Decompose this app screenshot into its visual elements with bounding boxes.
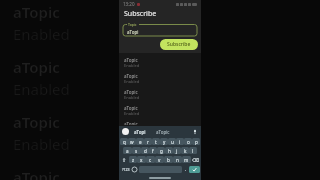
button[interactable]: Google: [122, 128, 129, 135]
staticText: i: [179, 139, 181, 145]
staticText: aTopic: [13, 2, 60, 22]
staticText: l: [192, 148, 194, 154]
staticText: ⇧: [122, 157, 127, 162]
button[interactable]: s: [132, 147, 141, 154]
staticText: aTopi: [127, 29, 139, 35]
button[interactable]: j: [173, 147, 181, 154]
staticText: k: [184, 148, 187, 154]
button[interactable]: Subscribe: [160, 39, 198, 50]
button[interactable]: w: [128, 138, 136, 145]
staticText: Enabled: [124, 63, 140, 68]
button[interactable]: q: [120, 138, 128, 145]
staticText: aTopic: [13, 112, 60, 132]
button[interactable]: v: [155, 156, 164, 163]
button[interactable]: y: [160, 138, 168, 145]
staticText: e: [139, 139, 142, 145]
button[interactable]: o: [184, 138, 192, 145]
staticText: Enabled: [124, 79, 140, 84]
button[interactable]: b: [164, 156, 173, 163]
staticText: aTopic: [124, 105, 138, 111]
staticText: y: [163, 139, 166, 145]
staticText: Enabled: [124, 95, 140, 100]
button[interactable]: c: [146, 156, 155, 163]
staticText: aTopic: [13, 57, 60, 77]
staticText: Subscribe: [124, 9, 157, 19]
staticText: q: [123, 139, 126, 145]
button[interactable]: h: [165, 147, 173, 154]
staticText: c: [149, 157, 152, 163]
staticText: x: [140, 157, 143, 163]
staticText: ⌫: [192, 157, 200, 162]
button[interactable]: Emoji: [131, 166, 138, 173]
staticText: aTopic: [124, 89, 138, 95]
staticText: w: [130, 139, 134, 145]
button[interactable]: Period: [183, 166, 189, 173]
button[interactable]: i: [176, 138, 184, 145]
button[interactable]: n: [173, 156, 182, 163]
staticText: Subscribe: [167, 41, 191, 48]
staticText: aTopic: [124, 73, 138, 79]
button[interactable]: Enter: [189, 166, 200, 173]
staticText: o: [187, 139, 190, 145]
staticText: aTopic: [124, 57, 138, 63]
staticText: z: [132, 157, 135, 163]
staticText: t: [155, 139, 157, 145]
button[interactable]: aTopic: [156, 129, 170, 135]
button[interactable]: e: [136, 138, 144, 145]
button[interactable]: aTopic: [119, 56, 201, 69]
staticText: Enabled: [13, 24, 70, 44]
staticText: g: [160, 148, 163, 154]
staticText: p: [195, 139, 198, 145]
button[interactable]: aTopi: [134, 129, 146, 135]
staticText: Enabled: [124, 111, 140, 116]
button[interactable]: Backspace: [191, 157, 200, 162]
staticText: h: [168, 148, 171, 154]
button[interactable]: u: [168, 138, 176, 145]
button[interactable]: t: [152, 138, 160, 145]
staticText: Topic: [128, 22, 137, 27]
staticText: j: [176, 148, 178, 154]
staticText: f: [152, 148, 154, 154]
button[interactable]: r: [144, 138, 152, 145]
button[interactable]: Voice input: [192, 129, 198, 135]
staticText: 13:20: [123, 1, 135, 7]
staticText: .: [185, 166, 187, 173]
button[interactable]: Shift: [120, 157, 129, 162]
staticText: Enabled: [13, 79, 70, 99]
button[interactable]: a: [123, 147, 132, 154]
button[interactable]: f: [149, 147, 157, 154]
staticText: s: [135, 148, 138, 154]
button[interactable]: g: [157, 147, 165, 154]
staticText: u: [171, 139, 174, 145]
button[interactable]: aTopic: [119, 104, 201, 117]
staticText: m: [184, 157, 189, 163]
button[interactable]: aTopic: [119, 120, 201, 126]
staticText: Enabled: [13, 134, 70, 154]
staticText: aTopic: [124, 121, 138, 125]
button[interactable]: Symbols: [120, 166, 131, 173]
button[interactable]: aTopic: [119, 72, 201, 85]
staticText: b: [167, 157, 170, 163]
button[interactable]: x: [137, 156, 146, 163]
button[interactable]: p: [192, 138, 200, 145]
staticText: aTopic: [13, 167, 60, 180]
staticText: v: [158, 157, 161, 163]
button[interactable]: k: [181, 147, 189, 154]
staticText: r: [147, 139, 149, 145]
button[interactable]: l: [189, 147, 197, 154]
staticText: ?123: [122, 167, 130, 172]
button[interactable]: m: [182, 156, 191, 163]
staticText: n: [176, 157, 179, 163]
staticText: a: [126, 148, 129, 154]
button[interactable]: aTopic: [119, 88, 201, 101]
button[interactable]: z: [129, 156, 137, 163]
button[interactable]: d: [141, 147, 149, 154]
staticText: d: [144, 148, 147, 154]
